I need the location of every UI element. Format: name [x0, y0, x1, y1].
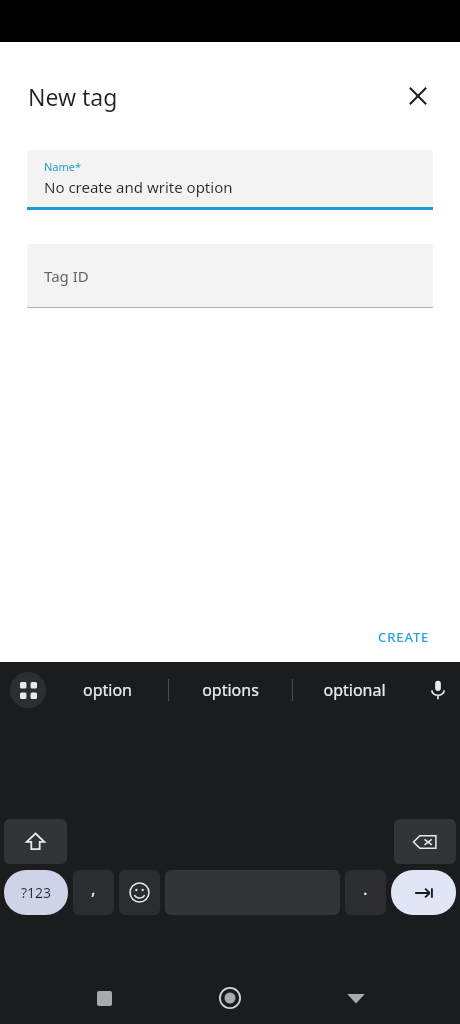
staticText: Tag ID [44, 266, 89, 286]
button[interactable]: Emoji [119, 870, 160, 915]
button[interactable]: Enter [391, 870, 456, 915]
button[interactable]: Voice input [416, 662, 460, 717]
staticText: No create and write option [44, 177, 233, 197]
button[interactable]: , [73, 870, 114, 915]
button[interactable]: Tag ID [27, 244, 433, 307]
button[interactable]: Backspace [394, 819, 456, 864]
staticText: ?123 [21, 883, 52, 902]
button[interactable]: Shift [4, 819, 67, 864]
button[interactable]: ?123 [4, 870, 68, 915]
staticText: . [363, 877, 368, 900]
staticText: option [83, 679, 132, 701]
staticText: options [202, 679, 259, 701]
staticText: , [91, 877, 96, 900]
button[interactable]: options [169, 662, 292, 717]
button[interactable]: Recent apps [82, 976, 126, 1020]
staticText: New tag [28, 81, 118, 112]
button[interactable]: Back [334, 976, 378, 1020]
staticText: Name* [44, 159, 82, 174]
button[interactable]: Close [394, 72, 442, 120]
button[interactable]: . [345, 870, 386, 915]
button[interactable]: Name* [27, 150, 433, 207]
button[interactable]: option [46, 662, 168, 717]
button[interactable]: CREATE [362, 618, 446, 656]
staticText: CREATE [378, 628, 430, 646]
button[interactable]: Toolbar [10, 672, 46, 708]
button[interactable]: Home [208, 976, 252, 1020]
button[interactable]: optional [293, 662, 416, 717]
staticText: optional [323, 679, 386, 701]
